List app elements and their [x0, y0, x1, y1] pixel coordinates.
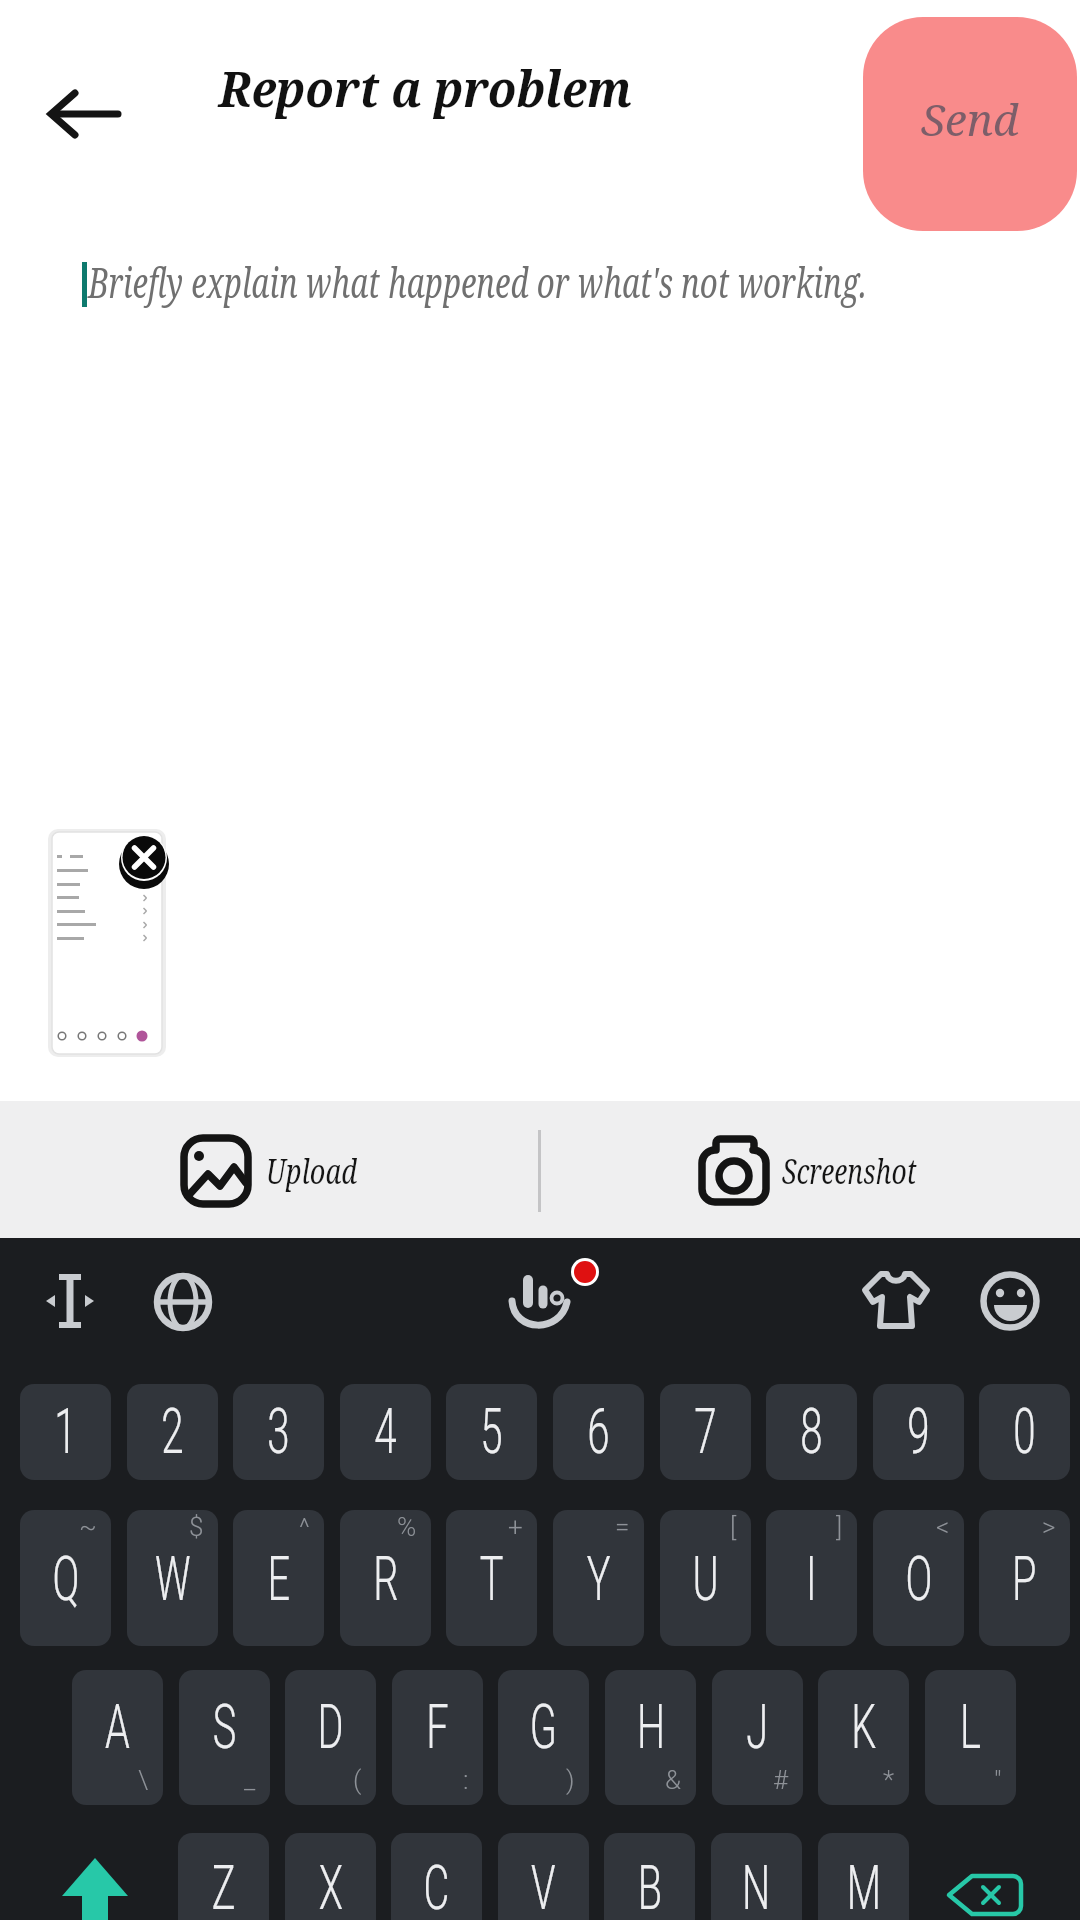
- button[interactable]: [920, 1833, 1060, 1920]
- button[interactable]: 0: [979, 1384, 1070, 1480]
- button[interactable]: C: [391, 1833, 482, 1920]
- staticText: &: [665, 1765, 682, 1795]
- button[interactable]: F: [392, 1670, 483, 1805]
- button[interactable]: J: [712, 1670, 803, 1805]
- staticText: G: [530, 1690, 557, 1763]
- staticText: L: [960, 1690, 981, 1763]
- staticText: 7: [694, 1395, 717, 1469]
- button[interactable]: 4: [340, 1384, 431, 1480]
- staticText: C: [423, 1851, 450, 1920]
- staticText: J: [746, 1690, 769, 1763]
- button[interactable]: B: [604, 1833, 695, 1920]
- staticText: U: [692, 1542, 719, 1615]
- button[interactable]: 1: [20, 1384, 111, 1480]
- button[interactable]: Q: [20, 1510, 111, 1646]
- button[interactable]: V: [498, 1833, 589, 1920]
- staticText: ~: [79, 1512, 97, 1542]
- staticText: N: [742, 1851, 771, 1920]
- button[interactable]: R: [340, 1510, 431, 1646]
- button[interactable]: U: [660, 1510, 751, 1646]
- button[interactable]: Z: [178, 1833, 269, 1920]
- staticText: Upload: [266, 1148, 357, 1194]
- button[interactable]: Y: [553, 1510, 644, 1646]
- button[interactable]: 6: [553, 1384, 644, 1480]
- staticText: #: [773, 1765, 789, 1795]
- staticText: =: [615, 1512, 630, 1542]
- staticText: Send: [921, 89, 1019, 149]
- button[interactable]: 3: [233, 1384, 324, 1480]
- staticText: >: [1042, 1512, 1056, 1542]
- staticText: M: [847, 1851, 881, 1920]
- staticText: F: [426, 1690, 449, 1763]
- staticText: 8: [800, 1395, 823, 1469]
- button[interactable]: Briefly explain what happened or what's …: [80, 248, 1080, 320]
- button[interactable]: [30, 70, 140, 160]
- staticText: +: [508, 1512, 523, 1542]
- staticText: 0: [1013, 1395, 1036, 1469]
- button[interactable]: [856, 1260, 936, 1340]
- staticText: 6: [587, 1395, 610, 1469]
- button[interactable]: [500, 1260, 580, 1340]
- button[interactable]: [52, 860, 162, 1054]
- staticText: K: [851, 1690, 877, 1763]
- staticText: 3: [267, 1395, 290, 1469]
- staticText: (: [353, 1765, 362, 1795]
- staticText: I: [806, 1542, 817, 1615]
- button[interactable]: Send: [863, 17, 1077, 231]
- button[interactable]: L: [925, 1670, 1016, 1805]
- staticText: T: [480, 1542, 504, 1615]
- button[interactable]: 8: [766, 1384, 857, 1480]
- staticText: [: [730, 1512, 737, 1542]
- staticText: Briefly explain what happened or what's …: [88, 253, 867, 310]
- button[interactable]: S: [179, 1670, 270, 1805]
- staticText: %: [397, 1512, 417, 1542]
- staticText: *: [883, 1765, 895, 1795]
- button[interactable]: E: [233, 1510, 324, 1646]
- button[interactable]: [20, 1833, 160, 1920]
- button[interactable]: D: [285, 1670, 376, 1805]
- staticText: \: [138, 1765, 149, 1795]
- button[interactable]: H: [605, 1670, 696, 1805]
- staticText: 1: [54, 1395, 77, 1469]
- button[interactable]: X: [285, 1833, 376, 1920]
- staticText: X: [319, 1851, 343, 1920]
- button[interactable]: W: [127, 1510, 218, 1646]
- button[interactable]: [30, 1260, 110, 1340]
- button[interactable]: T: [446, 1510, 537, 1646]
- button[interactable]: 5: [446, 1384, 537, 1480]
- button[interactable]: K: [818, 1670, 909, 1805]
- button[interactable]: Upload: [120, 1101, 480, 1238]
- button[interactable]: A: [72, 1670, 163, 1805]
- staticText: Screenshot: [782, 1148, 917, 1194]
- staticText: O: [906, 1542, 932, 1615]
- staticText: $: [189, 1512, 204, 1542]
- button[interactable]: [118, 833, 170, 885]
- button[interactable]: M: [818, 1833, 909, 1920]
- staticText: B: [638, 1851, 662, 1920]
- staticText: _: [244, 1765, 256, 1795]
- button[interactable]: Screenshot: [640, 1101, 1000, 1238]
- staticText: V: [531, 1851, 556, 1920]
- staticText: Report a problem: [219, 54, 632, 122]
- staticText: 5: [480, 1395, 503, 1469]
- staticText: A: [105, 1690, 130, 1763]
- button[interactable]: 2: [127, 1384, 218, 1480]
- staticText: ): [566, 1765, 575, 1795]
- button[interactable]: 7: [660, 1384, 751, 1480]
- button[interactable]: O: [873, 1510, 964, 1646]
- staticText: ]: [836, 1512, 843, 1542]
- staticText: P: [1012, 1542, 1037, 1615]
- staticText: E: [267, 1542, 290, 1615]
- button[interactable]: P: [979, 1510, 1070, 1646]
- staticText: ^: [299, 1512, 310, 1542]
- button[interactable]: G: [498, 1670, 589, 1805]
- staticText: H: [637, 1690, 665, 1763]
- staticText: <: [936, 1512, 950, 1542]
- button[interactable]: N: [711, 1833, 802, 1920]
- button[interactable]: [970, 1260, 1050, 1340]
- button[interactable]: I: [766, 1510, 857, 1646]
- staticText: W: [155, 1542, 191, 1615]
- button[interactable]: 9: [873, 1384, 964, 1480]
- staticText: Q: [53, 1542, 79, 1615]
- button[interactable]: [143, 1260, 223, 1340]
